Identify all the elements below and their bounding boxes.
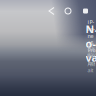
staticText: Portrait xyxy=(87,52,95,74)
button[interactable]: Back xyxy=(44,2,59,19)
button[interactable]: More xyxy=(77,2,94,19)
staticText: iPhone 15 Pro xyxy=(87,18,95,54)
button[interactable]: Info xyxy=(59,2,77,20)
staticText: Today xyxy=(87,44,96,58)
staticText: Nova xyxy=(85,22,96,65)
staticText: 9:41 AM xyxy=(87,46,95,68)
